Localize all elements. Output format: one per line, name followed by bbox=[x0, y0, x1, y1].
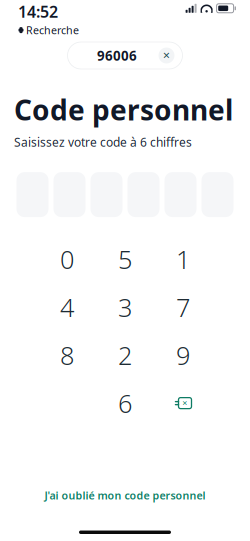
staticText: ✕ bbox=[162, 50, 170, 61]
staticText: Saisissez votre code à 6 chiffres bbox=[14, 134, 192, 150]
button[interactable]: 8 bbox=[38, 331, 96, 379]
staticText: 3 bbox=[118, 290, 132, 324]
button[interactable]: Delete bbox=[154, 379, 212, 427]
button[interactable]: 1 bbox=[154, 235, 212, 283]
button[interactable]: 0 bbox=[38, 235, 96, 283]
staticText: 7 bbox=[176, 290, 190, 324]
staticText: 5 bbox=[118, 242, 132, 276]
button[interactable]: 96006 bbox=[67, 42, 182, 69]
staticText: 9 bbox=[176, 338, 190, 372]
staticText: 1 bbox=[176, 242, 190, 276]
button[interactable]: 4 bbox=[38, 283, 96, 331]
button[interactable]: J'ai oublié mon code personnel bbox=[30, 482, 219, 508]
button[interactable]: 5 bbox=[96, 235, 154, 283]
staticText: 2 bbox=[118, 338, 132, 372]
staticText: J'ai oublié mon code personnel bbox=[44, 488, 205, 502]
button[interactable]: 2 bbox=[96, 331, 154, 379]
button[interactable]: 3 bbox=[96, 283, 154, 331]
staticText: ✕ bbox=[182, 399, 188, 407]
staticText: 14:52 bbox=[18, 1, 58, 22]
button[interactable]: 7 bbox=[154, 283, 212, 331]
button[interactable]: 9 bbox=[154, 331, 212, 379]
staticText: Recherche bbox=[26, 23, 79, 37]
staticText: 6 bbox=[118, 386, 132, 420]
staticText: 8 bbox=[60, 338, 74, 372]
staticText: 0 bbox=[60, 242, 74, 276]
button[interactable]: 6 bbox=[96, 379, 154, 427]
staticText: 96006 bbox=[97, 47, 137, 64]
staticText: Code personnel bbox=[14, 91, 233, 128]
staticText: 4 bbox=[60, 290, 74, 324]
